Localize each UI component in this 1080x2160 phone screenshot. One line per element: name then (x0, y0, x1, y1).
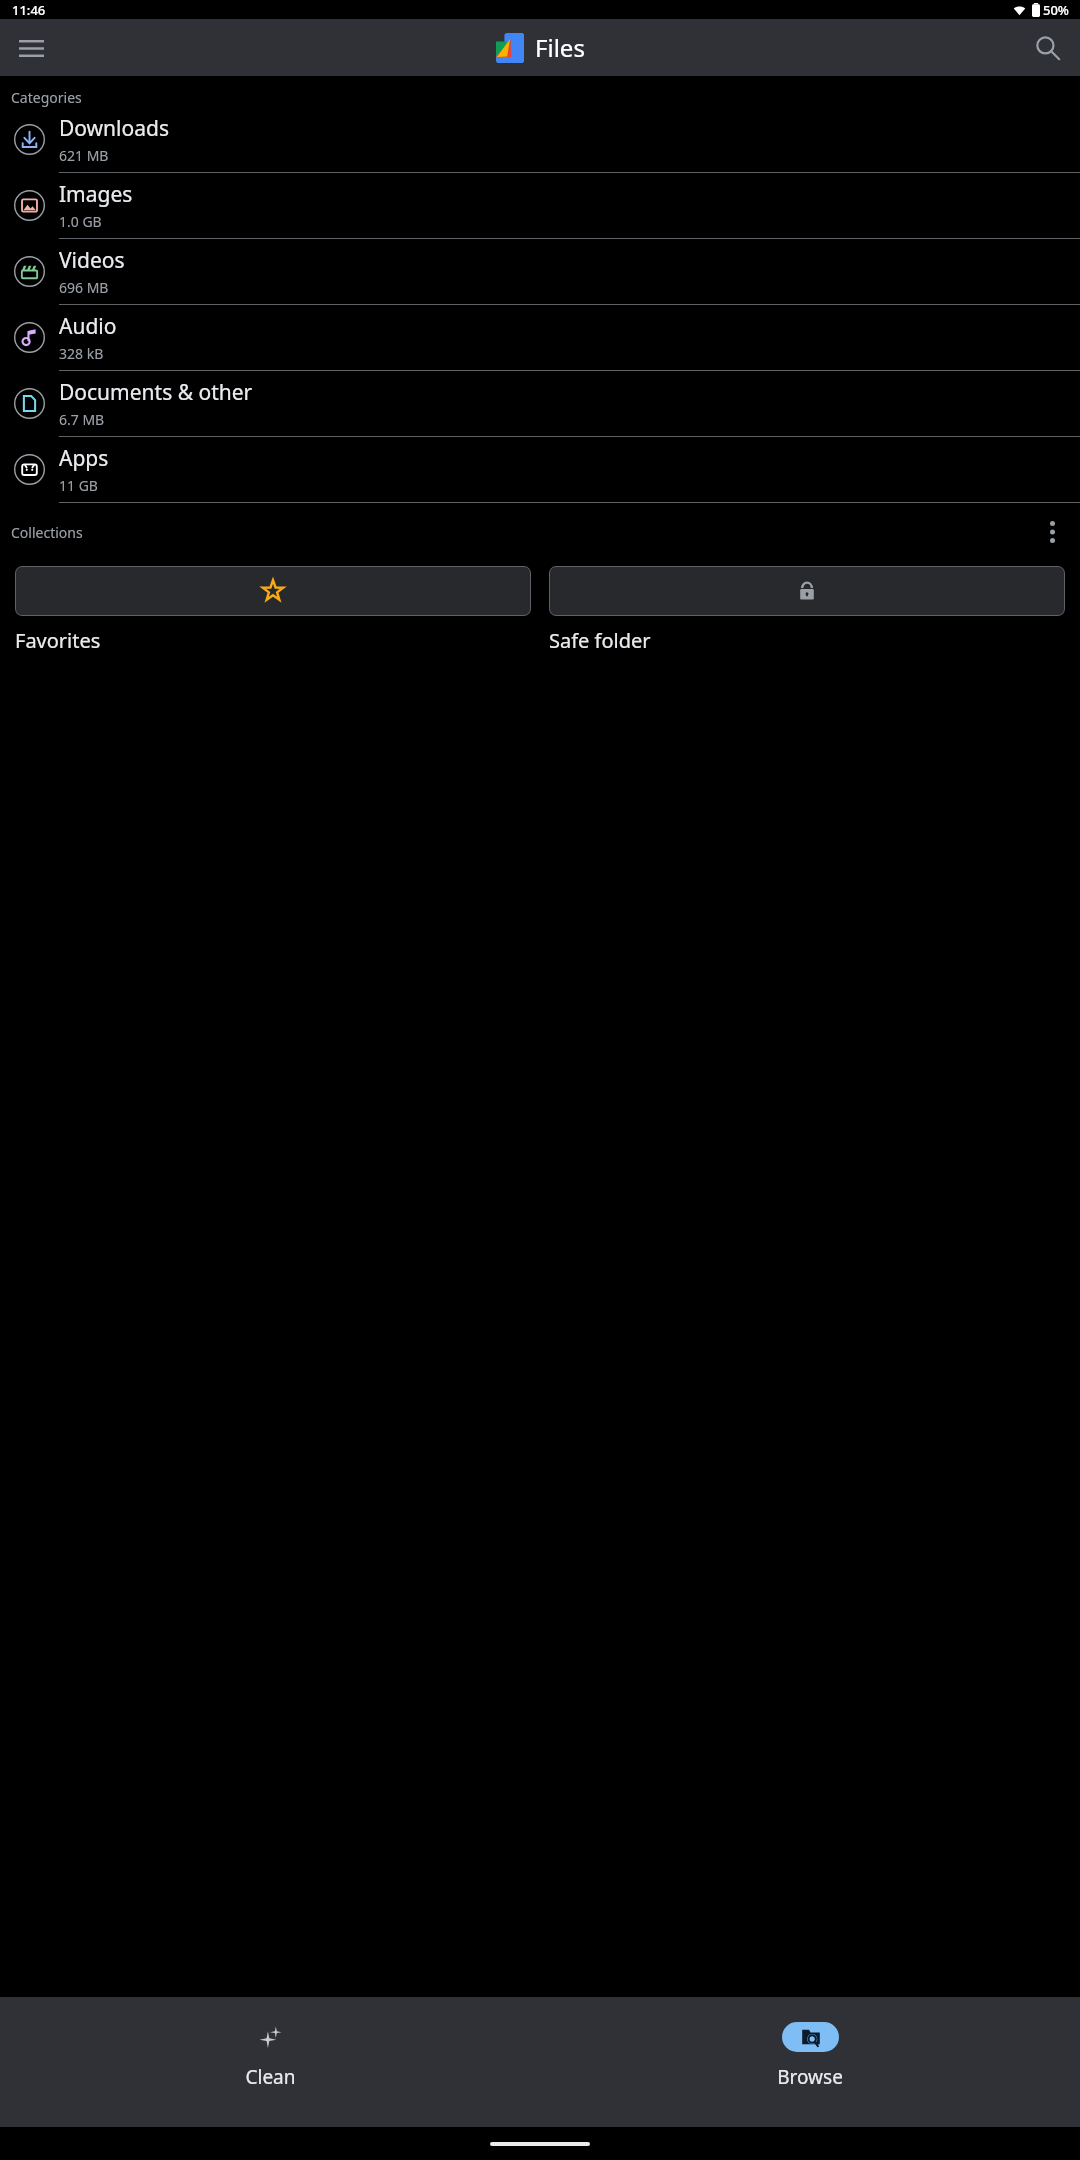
button[interactable]: Favorites (15, 566, 531, 654)
staticText: Videos (59, 246, 125, 275)
button[interactable]: Search (1024, 24, 1072, 72)
button[interactable]: Documents & other (0, 371, 1080, 437)
button[interactable]: Downloads (0, 107, 1080, 173)
staticText: Documents & other (59, 378, 253, 407)
staticText: Downloads (59, 114, 169, 143)
staticText: Categories (11, 88, 82, 107)
staticText: Images (59, 180, 133, 209)
staticText: Audio (59, 312, 117, 341)
button[interactable]: Images (0, 173, 1080, 239)
button[interactable]: Clean (0, 1997, 540, 2127)
button[interactable]: Open navigation menu (7, 24, 55, 72)
button[interactable]: More options (1031, 511, 1073, 553)
staticText: 11:46 (12, 1, 46, 19)
button[interactable]: Audio (0, 305, 1080, 371)
staticText: Safe folder (549, 627, 651, 654)
staticText: Favorites (15, 627, 101, 654)
staticText: 6.7 MB (59, 410, 105, 429)
staticText: 696 MB (59, 278, 109, 297)
staticText: 50% (1043, 1, 1069, 19)
staticText: Collections (11, 523, 83, 542)
staticText: 621 MB (59, 146, 109, 165)
staticText: Browse (777, 2064, 843, 2090)
staticText: Files (535, 31, 585, 64)
staticText: 328 kB (59, 344, 104, 363)
staticText: Clean (245, 2064, 296, 2090)
staticText: 11 GB (59, 476, 98, 495)
button[interactable]: Apps (0, 437, 1080, 503)
button[interactable]: Videos (0, 239, 1080, 305)
button[interactable]: Browse (540, 1997, 1080, 2127)
staticText: 1.0 GB (59, 212, 102, 231)
button[interactable]: Safe folder (549, 566, 1065, 654)
staticText: Apps (59, 444, 109, 473)
